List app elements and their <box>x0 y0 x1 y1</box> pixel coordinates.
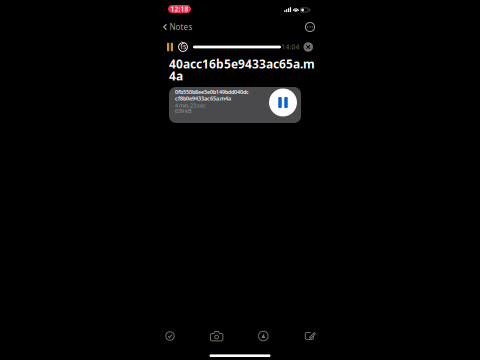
staticText: Notes <box>169 22 192 32</box>
button[interactable]: Pause <box>167 43 173 51</box>
staticText: 4 min, 23 sec <box>175 102 206 109</box>
staticText: 14:04 <box>281 43 299 51</box>
staticText: 15 <box>180 44 186 51</box>
staticText: cf8b0e9433ac65a.m4a <box>175 95 231 102</box>
button[interactable]: Skip back 15 seconds <box>178 42 188 52</box>
button[interactable]: 0fb550b8ee5e0b149bdd040dc <box>169 87 301 123</box>
staticText: 12:18 <box>170 5 188 13</box>
button[interactable]: Camera <box>203 328 231 344</box>
staticText: 4a <box>169 68 183 84</box>
button[interactable]: Notes <box>163 19 196 35</box>
button[interactable]: Markup <box>249 328 277 344</box>
button[interactable]: Close player <box>303 42 313 52</box>
button[interactable]: More <box>303 20 317 34</box>
staticText: 40acc16b5e9433ac65a.m <box>169 56 315 72</box>
staticText: 639 kB <box>175 107 191 115</box>
staticText: 0fb550b8ee5e0b149bdd040dc <box>175 88 249 96</box>
button[interactable]: New note <box>296 328 324 344</box>
button[interactable]: Checklist <box>156 328 184 344</box>
